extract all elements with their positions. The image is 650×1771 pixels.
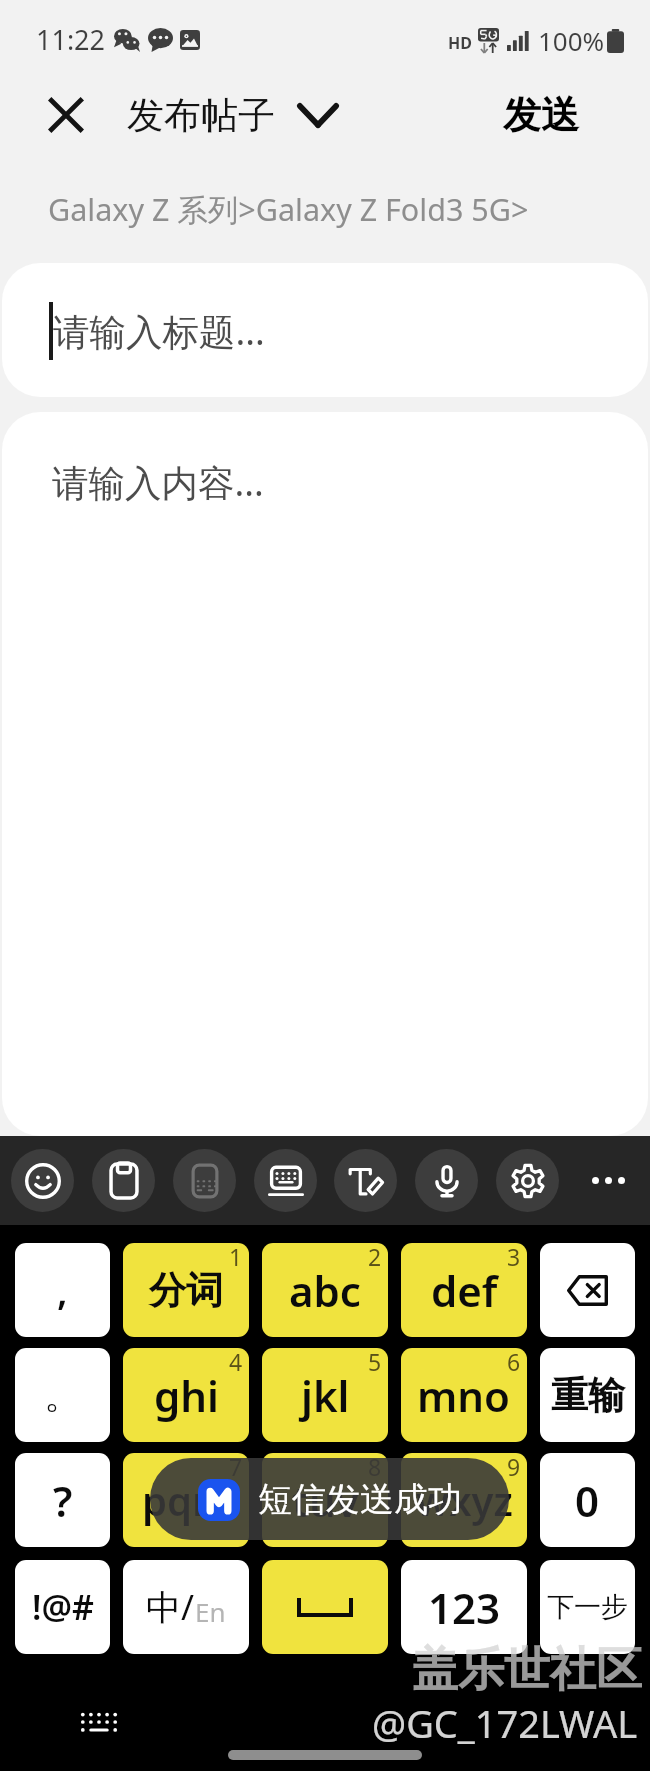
- button[interactable]: Emoji: [11, 1149, 74, 1212]
- staticText: En: [195, 1594, 226, 1629]
- staticText: 短信发送成功: [258, 1478, 462, 1521]
- button[interactable]: Voice input: [415, 1149, 478, 1212]
- staticText: 发送: [503, 91, 579, 139]
- button[interactable]: 。: [15, 1348, 110, 1442]
- staticText: Galaxy Z 系列>Galaxy Z Fold3 5G>: [48, 188, 529, 230]
- button[interactable]: [540, 1243, 635, 1337]
- button[interactable]: abc: [262, 1243, 388, 1337]
- staticText: 6: [507, 1348, 521, 1377]
- staticText: 3: [507, 1243, 521, 1272]
- button[interactable]: Hide keyboard: [73, 1696, 125, 1748]
- staticText: 1: [229, 1243, 243, 1272]
- button[interactable]: mno: [401, 1348, 527, 1442]
- button[interactable]: 发送: [503, 91, 579, 139]
- button[interactable]: [262, 1560, 388, 1654]
- staticText: 盖乐世社区: [412, 1641, 642, 1699]
- button[interactable]: Keyboard layout: [254, 1149, 317, 1212]
- staticText: 2: [368, 1243, 382, 1272]
- staticText: ,: [57, 1264, 68, 1316]
- button[interactable]: pqrs: [123, 1453, 249, 1547]
- button[interactable]: jkl: [262, 1348, 388, 1442]
- staticText: @GC_172LWAL: [372, 1697, 638, 1749]
- button[interactable]: ghi: [123, 1348, 249, 1442]
- button[interactable]: 下一步: [540, 1560, 635, 1654]
- staticText: ?: [53, 1472, 73, 1529]
- button[interactable]: 0: [540, 1453, 635, 1547]
- button[interactable]: Clipboard: [92, 1149, 155, 1212]
- staticText: 下一步: [547, 1590, 628, 1624]
- staticText: 请输入标题...: [53, 306, 265, 356]
- button[interactable]: 请输入内容...: [2, 412, 648, 1136]
- button[interactable]: ,: [15, 1243, 110, 1337]
- staticText: pqrs: [142, 1473, 230, 1527]
- staticText: ghi: [154, 1367, 219, 1424]
- staticText: 重输: [551, 1372, 625, 1419]
- staticText: 发布帖子: [127, 92, 275, 139]
- staticText: 7: [229, 1453, 243, 1482]
- staticText: 5: [368, 1348, 382, 1377]
- button[interactable]: Number pad: [173, 1149, 236, 1212]
- staticText: tuv: [292, 1472, 359, 1529]
- button[interactable]: !@#: [15, 1560, 110, 1654]
- button[interactable]: 123: [401, 1560, 527, 1654]
- staticText: 9: [507, 1453, 521, 1482]
- staticText: 请输入内容...: [52, 457, 264, 507]
- staticText: 123: [428, 1579, 501, 1636]
- button[interactable]: ?: [15, 1453, 110, 1547]
- button[interactable]: def: [401, 1243, 527, 1337]
- staticText: jkl: [301, 1367, 350, 1424]
- button[interactable]: More options: [577, 1149, 640, 1212]
- staticText: 。: [44, 1371, 82, 1419]
- staticText: !@#: [32, 1584, 94, 1630]
- staticText: 中/: [146, 1583, 195, 1631]
- button[interactable]: Settings: [496, 1149, 559, 1212]
- staticText: 100%: [538, 23, 605, 58]
- button[interactable]: 中/: [123, 1560, 249, 1654]
- button[interactable]: Close: [40, 89, 92, 141]
- staticText: 4: [229, 1348, 243, 1377]
- button[interactable]: tuv: [262, 1453, 388, 1547]
- staticText: mno: [417, 1367, 511, 1424]
- button[interactable]: 请输入标题...: [2, 263, 648, 397]
- staticText: HD: [448, 32, 472, 54]
- staticText: 11:22: [36, 21, 106, 58]
- staticText: abc: [289, 1262, 361, 1319]
- button[interactable]: 分词: [123, 1243, 249, 1337]
- button[interactable]: wxyz: [401, 1453, 527, 1547]
- button[interactable]: 重输: [540, 1348, 635, 1442]
- button[interactable]: 发布帖子: [127, 92, 339, 139]
- staticText: 0: [575, 1472, 600, 1529]
- staticText: wxyz: [416, 1473, 513, 1527]
- button[interactable]: Galaxy Z 系列>Galaxy Z Fold3 5G>: [48, 148, 650, 263]
- staticText: 8: [368, 1453, 382, 1482]
- staticText: def: [431, 1262, 498, 1319]
- staticText: 分词: [149, 1267, 223, 1314]
- button[interactable]: Handwriting: [334, 1149, 397, 1212]
